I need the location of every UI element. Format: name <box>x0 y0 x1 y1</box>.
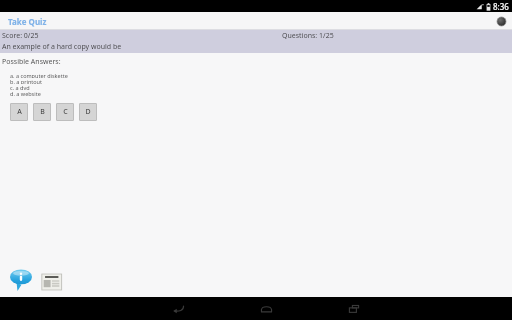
staticText: Possible Answers: <box>2 57 61 67</box>
staticText: b. a printout <box>10 78 42 84</box>
staticText: Take Quiz <box>8 16 47 27</box>
staticText: A <box>17 107 22 117</box>
staticText: D <box>85 107 91 117</box>
button[interactable]: C <box>56 103 74 121</box>
button[interactable]: B <box>33 103 51 121</box>
button[interactable]: Recent apps <box>341 297 367 320</box>
staticText: B <box>40 107 45 117</box>
button[interactable]: Info <box>10 268 32 292</box>
staticText: a. a computer diskette <box>10 72 68 78</box>
staticText: Score: 0/25 <box>2 31 39 41</box>
button[interactable]: Home <box>253 297 279 320</box>
staticText: c. a dvd <box>10 84 30 90</box>
button[interactable]: D <box>79 103 97 121</box>
button[interactable]: A <box>10 103 28 121</box>
staticText: Questions: 1/25 <box>282 31 334 41</box>
button[interactable]: More options <box>496 16 507 27</box>
staticText: C <box>63 107 68 117</box>
button[interactable]: News <box>40 272 63 292</box>
staticText: 8:36 <box>493 1 509 12</box>
button[interactable]: Back <box>165 297 191 320</box>
staticText: d. a website <box>10 90 41 96</box>
staticText: An example of a hard copy would be <box>2 42 122 52</box>
